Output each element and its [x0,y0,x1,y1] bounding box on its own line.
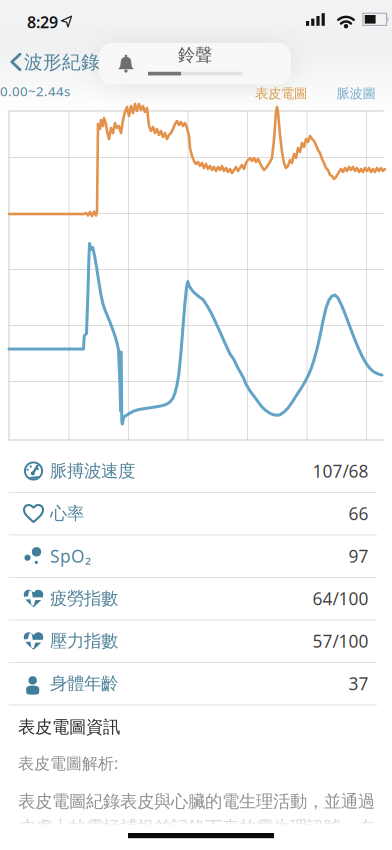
staticText: 8:29 [27,11,58,33]
staticText: 表皮電圖資訊 [18,716,120,738]
staticText: 表皮電圖紀錄表皮與心臟的電生理活動，並通過 [18,791,375,812]
staticText: 表皮電圖解析: [18,752,118,774]
staticText: 表皮電圖 [255,85,307,102]
button[interactable]: 波形紀錄 [0,40,124,84]
staticText: 37 [348,672,368,695]
staticText: 0.00~2.44s [0,82,70,100]
staticText: 脈波圖 [336,85,375,102]
staticText: 心率 [50,503,84,524]
staticText: 64/100 [312,587,368,610]
staticText: 皮膚上的電極捕捉並記錄下來的電生理訊號，在 [18,817,375,838]
staticText: SpO₂ [50,544,91,567]
staticText: 波形紀錄 [24,51,100,74]
button[interactable]: 表皮電圖 [255,85,307,102]
staticText: 疲勞指數 [50,588,118,609]
button[interactable]: 脈波圖 [336,85,375,102]
staticText: 107/68 [312,459,368,482]
staticText: 66 [348,502,368,525]
staticText: 脈搏波速度 [50,460,135,482]
staticText: 97 [348,544,368,567]
staticText: 身體年齡 [50,673,118,694]
staticText: 57/100 [312,629,368,652]
staticText: 壓力指數 [50,630,118,652]
staticText: 鈴聲 [178,44,212,66]
